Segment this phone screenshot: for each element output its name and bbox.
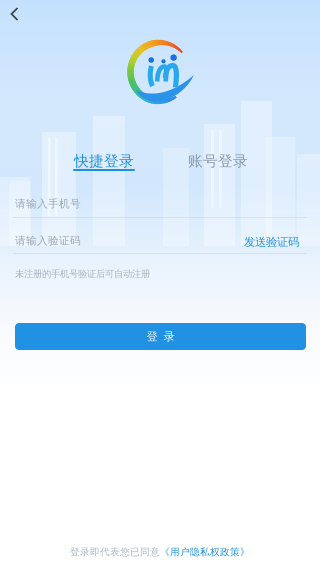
- button[interactable]: 快捷登录: [60, 152, 148, 180]
- staticText: 请输入手机号: [15, 197, 81, 210]
- staticText: 登录即代表您已同意: [70, 546, 160, 558]
- button[interactable]: 《用户隐私权政策》: [160, 546, 250, 558]
- button[interactable]: Back: [8, 4, 34, 30]
- staticText: 快捷登录: [74, 152, 134, 170]
- staticText: 发送验证码: [244, 235, 299, 249]
- staticText: 请输入验证码: [15, 234, 81, 247]
- staticText: 《用户隐私权政策》: [160, 546, 250, 558]
- staticText: 账号登录: [188, 152, 248, 170]
- staticText: 未注册的手机号验证后可自动注册: [15, 268, 150, 280]
- button[interactable]: 发送验证码: [219, 233, 299, 251]
- button[interactable]: 账号登录: [174, 152, 262, 180]
- staticText: 登 录: [146, 329, 174, 344]
- button[interactable]: 登 录: [15, 323, 306, 350]
